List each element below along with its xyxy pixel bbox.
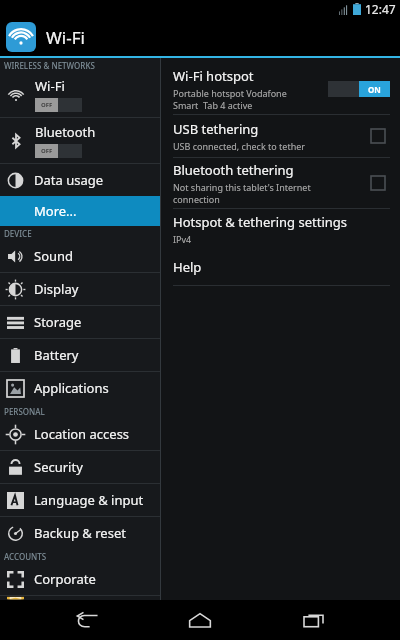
button[interactable]: USB tethering: [173, 115, 390, 157]
staticText: Display: [34, 280, 79, 298]
button[interactable]: Corporate: [0, 563, 160, 595]
button[interactable]: Sound: [0, 240, 160, 272]
button[interactable]: Back: [60, 602, 114, 638]
staticText: OFF: [41, 101, 53, 109]
staticText: WIRELESS & NETWORKS: [4, 60, 95, 71]
staticText: Bluetooth tethering: [173, 161, 294, 179]
staticText: Hotspot & tethering settings: [173, 213, 348, 231]
button[interactable]: Location access: [0, 418, 160, 450]
button[interactable]: Wi-Fi: [0, 72, 160, 117]
staticText: ACCOUNTS: [4, 551, 47, 562]
button[interactable]: Wi-Fi hotspot: [173, 64, 390, 114]
button[interactable]: Bluetooth tethering checkbox: [366, 171, 390, 195]
button[interactable]: Data usage: [0, 164, 160, 196]
staticText: More...: [34, 202, 77, 220]
button[interactable]: Hotspot & tethering settings: [173, 209, 390, 249]
button[interactable]: Toggle off: [35, 144, 82, 158]
staticText: Storage: [34, 313, 82, 331]
button[interactable]: Applications: [0, 372, 160, 404]
staticText: Smart Tab 4 active: [173, 99, 253, 111]
button[interactable]: Bluetooth tethering: [173, 158, 390, 208]
staticText: ON: [368, 84, 381, 95]
staticText: Battery: [34, 346, 79, 364]
button[interactable]: Backup & reset: [0, 517, 160, 549]
staticText: Security: [34, 458, 83, 476]
staticText: IPv4: [173, 233, 192, 245]
staticText: USB connected, check to tether: [173, 140, 305, 152]
staticText: Help: [173, 258, 202, 276]
button[interactable]: Toggle off: [35, 98, 82, 112]
button[interactable]: Recent apps: [287, 602, 341, 638]
button[interactable]: USB tethering checkbox: [366, 124, 390, 148]
staticText: Wi-Fi hotspot: [173, 67, 254, 85]
staticText: Data usage: [34, 171, 104, 189]
button[interactable]: Language & input: [0, 484, 160, 516]
staticText: Location access: [34, 425, 130, 443]
staticText: DEVICE: [4, 228, 32, 239]
button[interactable]: Wi-Fi hotspot on: [328, 81, 390, 97]
button[interactable]: Home: [173, 602, 227, 638]
staticText: USB tethering: [173, 120, 259, 138]
staticText: Sound: [34, 247, 74, 265]
button[interactable]: Help: [173, 249, 390, 285]
button[interactable]: Bluetooth: [0, 118, 160, 163]
staticText: Backup & reset: [34, 524, 126, 542]
button[interactable]: More...: [0, 196, 160, 226]
button[interactable]: Email: [0, 596, 160, 600]
button[interactable]: Battery: [0, 339, 160, 371]
staticText: Portable hotspot Vodafone: [173, 87, 287, 99]
staticText: Bluetooth: [35, 123, 96, 141]
staticText: Wi-Fi: [46, 26, 85, 49]
staticText: OFF: [41, 147, 53, 155]
staticText: 12:47: [365, 1, 396, 17]
button[interactable]: Security: [0, 451, 160, 483]
staticText: Not sharing this tablet's Internet: [173, 181, 311, 193]
staticText: Language & input: [34, 491, 144, 509]
staticText: Corporate: [34, 570, 96, 588]
button[interactable]: Display: [0, 273, 160, 305]
staticText: Applications: [34, 379, 109, 397]
staticText: Wi-Fi: [35, 77, 65, 95]
staticText: connection: [173, 193, 220, 205]
button[interactable]: Storage: [0, 306, 160, 338]
staticText: PERSONAL: [4, 406, 45, 417]
